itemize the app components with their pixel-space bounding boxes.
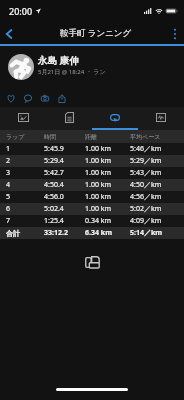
staticText: 4 <box>6 180 11 190</box>
staticText: 5:29.4 <box>44 156 64 166</box>
button[interactable]: Analysis <box>138 107 184 130</box>
button[interactable]: 1 <box>0 143 184 155</box>
staticText: 33:12.2 <box>44 228 68 238</box>
button[interactable]: Map <box>0 107 46 130</box>
staticText: 5:46／km <box>130 144 162 154</box>
staticText: 平均ペース <box>130 133 161 141</box>
staticText: 6.34 km <box>85 228 112 238</box>
button[interactable]: ラップ <box>0 130 184 143</box>
staticText: 5:29／km <box>130 156 162 166</box>
button[interactable]: Laps <box>92 107 138 130</box>
button[interactable]: Comment <box>19 90 36 107</box>
staticText: 1.00 km <box>85 192 111 202</box>
staticText: 4:56.0 <box>44 192 64 202</box>
staticText: 3 <box>6 168 11 178</box>
button[interactable]: Details <box>46 107 92 130</box>
staticText: 4:50.4 <box>44 180 64 190</box>
staticText: 5:02.4 <box>44 204 64 214</box>
staticText: 7 <box>6 216 11 226</box>
staticText: 1 <box>6 144 11 154</box>
staticText: 5:42.7 <box>44 168 64 178</box>
staticText: 5:45.9 <box>44 144 64 154</box>
staticText: 5:43／km <box>130 168 162 178</box>
button[interactable]: Like <box>2 90 19 107</box>
staticText: 永島 康伸 <box>38 54 79 67</box>
staticText: ラップ <box>6 133 25 141</box>
button[interactable]: Back <box>0 23 18 44</box>
button[interactable]: Compare laps <box>82 252 102 272</box>
button[interactable]: 5 <box>0 191 184 203</box>
staticText: 1.00 km <box>85 156 111 166</box>
staticText: 1.00 km <box>85 144 111 154</box>
staticText: 5:02／km <box>130 204 162 214</box>
staticText: 20:00 <box>9 5 33 17</box>
staticText: 1.00 km <box>85 168 111 178</box>
staticText: 鞍手町 ランニング <box>60 27 132 39</box>
staticText: 0.34 km <box>85 216 111 226</box>
staticText: 1.00 km <box>85 204 111 214</box>
staticText: 6 <box>6 204 11 214</box>
button[interactable]: 2 <box>0 155 184 167</box>
button[interactable]: 永島 康伸 <box>0 45 184 89</box>
staticText: 距離 <box>85 133 97 141</box>
staticText: 4:09／km <box>130 216 162 226</box>
button[interactable]: 6 <box>0 203 184 215</box>
button[interactable]: 3 <box>0 167 184 179</box>
button[interactable]: Photo <box>36 90 53 107</box>
staticText: 2 <box>6 156 11 166</box>
button[interactable]: 4 <box>0 179 184 191</box>
staticText: 1:25.4 <box>44 216 64 226</box>
staticText: 1.00 km <box>85 180 111 190</box>
button[interactable]: 合計 <box>0 227 184 239</box>
button[interactable]: More options <box>165 23 184 44</box>
button[interactable]: 7 <box>0 215 184 227</box>
staticText: 5 <box>6 192 11 202</box>
staticText: 5月21日 @ 18:24 ・ ラン <box>38 68 106 76</box>
staticText: 5:14／km <box>130 228 163 238</box>
staticText: 4:50／km <box>130 180 162 190</box>
staticText: 4:56／km <box>130 192 162 202</box>
button[interactable]: Share <box>53 90 70 107</box>
staticText: 合計 <box>6 229 20 238</box>
staticText: 時間 <box>44 133 56 141</box>
